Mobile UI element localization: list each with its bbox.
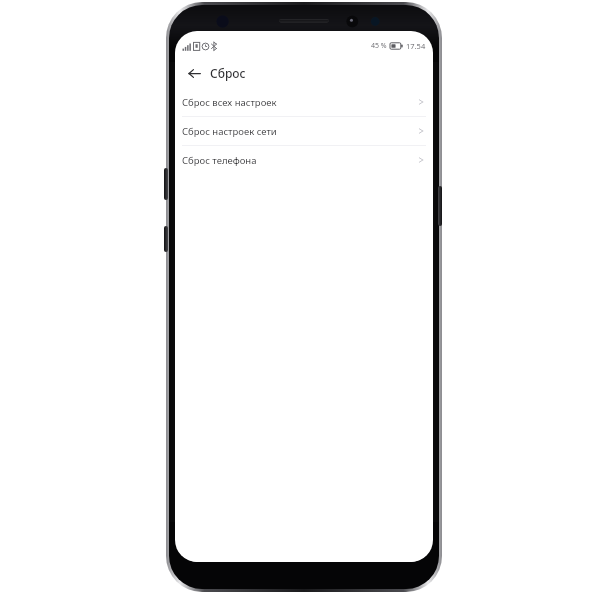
- staticText: Сброс: [210, 65, 246, 81]
- staticText: Сброс всех настроек: [182, 96, 418, 109]
- button[interactable]: Bixby button: [164, 226, 168, 252]
- button[interactable]: Сброс всех настроек: [176, 88, 432, 116]
- button[interactable]: Сброс настроек сети: [176, 117, 432, 145]
- staticText: Сброс настроек сети: [182, 125, 418, 138]
- staticText: Сброс телефона: [182, 154, 418, 167]
- staticText: 45 %: [371, 41, 387, 51]
- button[interactable]: Сброс телефона: [176, 146, 432, 174]
- staticText: 17.54: [406, 41, 426, 51]
- button[interactable]: Power button: [438, 186, 442, 226]
- button[interactable]: Back: [181, 60, 207, 86]
- button[interactable]: Volume button: [164, 168, 168, 200]
